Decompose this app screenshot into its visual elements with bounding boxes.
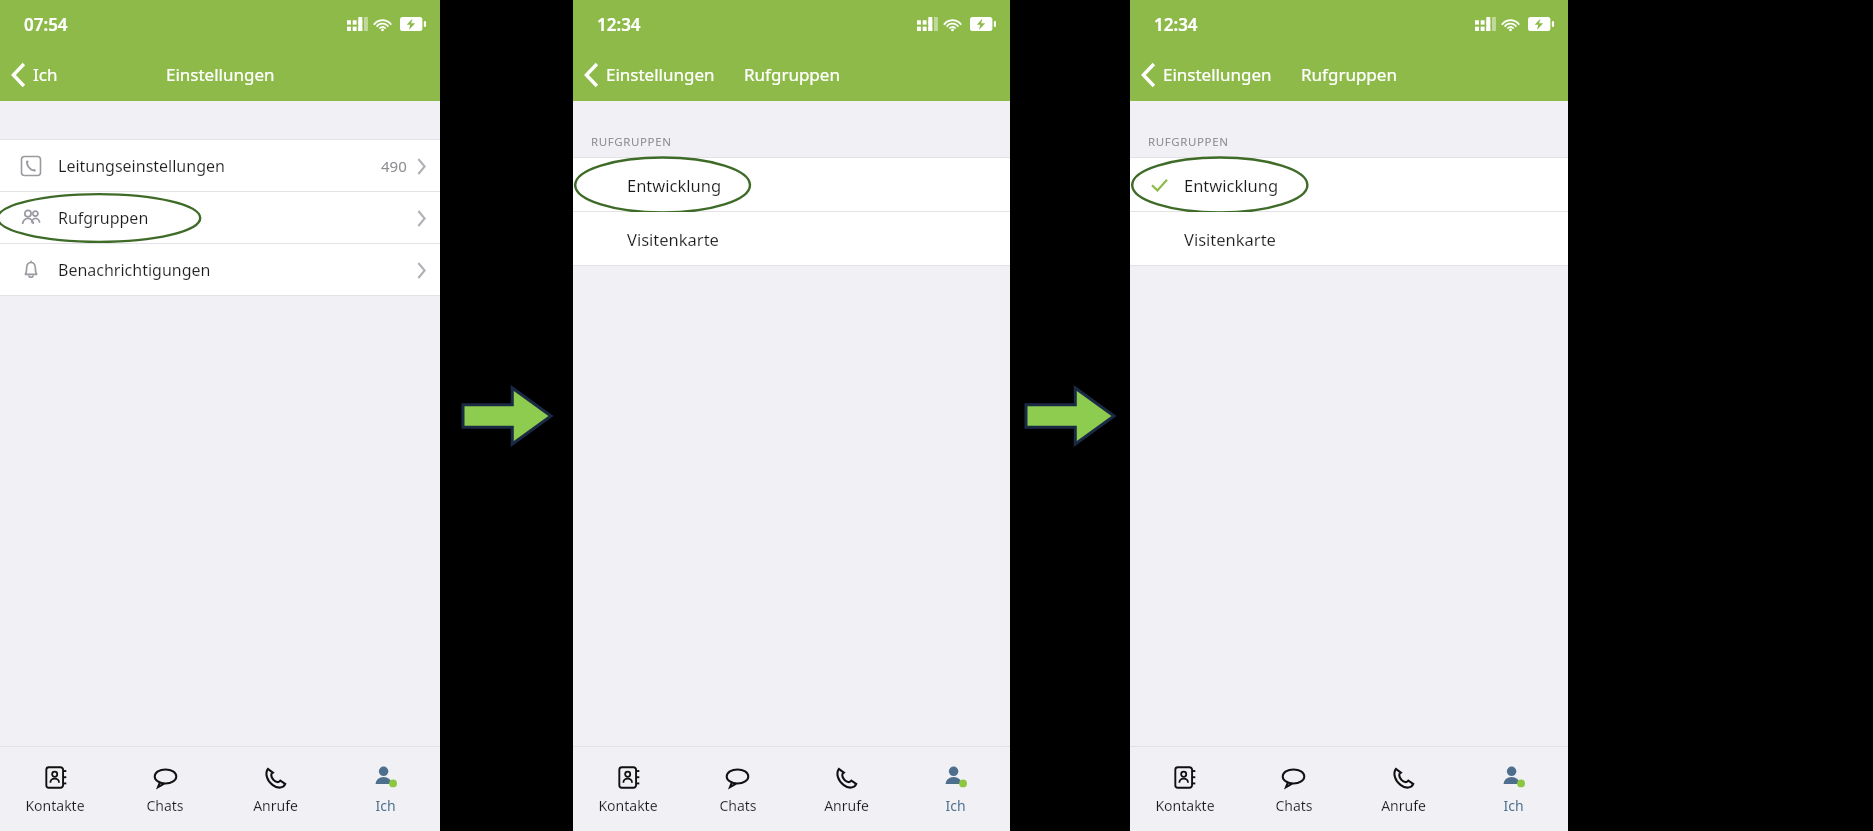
staticText: Visitenkarte <box>627 228 719 250</box>
staticText: Kontakte <box>1155 796 1215 815</box>
button[interactable]: Kontakte <box>1130 747 1239 831</box>
button[interactable]: Kontakte <box>0 747 110 831</box>
button[interactable]: Chats <box>683 747 792 831</box>
button[interactable]: Leitungseinstellungen <box>0 140 440 192</box>
button[interactable]: Benachrichtigungen <box>0 244 440 296</box>
staticText: RUFGRUPPEN <box>591 134 672 150</box>
button[interactable]: Visitenkarte <box>1130 212 1568 266</box>
staticText: 12:34 <box>597 13 641 36</box>
staticText: Chats <box>719 796 757 815</box>
staticText: Benachrichtigungen <box>58 259 211 281</box>
staticText: Leitungseinstellungen <box>58 155 225 177</box>
staticText: Anrufe <box>1381 796 1426 815</box>
staticText: Kontakte <box>25 796 85 815</box>
staticText: Rufgruppen <box>58 207 149 229</box>
button[interactable]: Ich <box>330 747 440 831</box>
staticText: Visitenkarte <box>1184 228 1276 250</box>
button[interactable]: Ich <box>1458 747 1568 831</box>
staticText: 490 <box>381 156 407 176</box>
staticText: Entwicklung <box>627 174 722 196</box>
staticText: Ich <box>375 796 396 815</box>
button[interactable]: Chats <box>1239 747 1348 831</box>
button[interactable]: Anrufe <box>792 747 901 831</box>
staticText: Einstellungen <box>166 63 275 86</box>
staticText: 07:54 <box>24 13 68 36</box>
staticText: Einstellungen <box>1163 63 1272 86</box>
staticText: Ich <box>945 796 966 815</box>
staticText: Chats <box>1275 796 1313 815</box>
button[interactable]: Rufgruppen <box>0 192 440 244</box>
staticText: Anrufe <box>253 796 298 815</box>
button[interactable]: Ich <box>0 57 68 92</box>
staticText: Rufgruppen <box>744 63 840 86</box>
staticText: Chats <box>146 796 184 815</box>
button[interactable]: Entwicklung <box>1130 158 1568 212</box>
staticText: Entwicklung <box>1184 174 1279 196</box>
staticText: Rufgruppen <box>1301 63 1397 86</box>
staticText: Ich <box>33 63 58 86</box>
button[interactable]: Einstellungen <box>1130 57 1282 92</box>
button[interactable]: Einstellungen <box>573 57 725 92</box>
button[interactable]: Ich <box>901 747 1010 831</box>
staticText: Ich <box>1503 796 1524 815</box>
button[interactable]: Chats <box>110 747 220 831</box>
staticText: RUFGRUPPEN <box>1148 134 1229 150</box>
button[interactable]: Anrufe <box>1348 747 1458 831</box>
staticText: Anrufe <box>824 796 869 815</box>
button[interactable]: Kontakte <box>573 747 683 831</box>
staticText: 12:34 <box>1154 13 1198 36</box>
button[interactable]: Entwicklung <box>573 158 1010 212</box>
button[interactable]: Visitenkarte <box>573 212 1010 266</box>
staticText: Einstellungen <box>606 63 715 86</box>
staticText: Kontakte <box>598 796 658 815</box>
button[interactable]: Anrufe <box>220 747 330 831</box>
